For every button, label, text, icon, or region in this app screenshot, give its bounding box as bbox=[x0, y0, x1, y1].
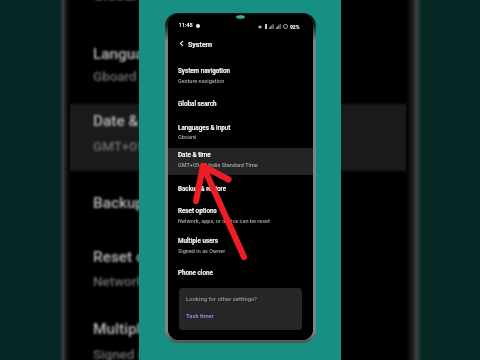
staticText: Phone clone bbox=[178, 269, 213, 276]
button[interactable] bbox=[168, 117, 313, 144]
staticText: Multiple users bbox=[178, 237, 218, 244]
staticText: Gboard bbox=[178, 134, 196, 140]
button[interactable] bbox=[69, 304, 413, 360]
staticText: Task timer bbox=[186, 313, 214, 320]
staticText: Reset options bbox=[178, 207, 217, 214]
button[interactable] bbox=[168, 145, 313, 172]
staticText: GMT+05:30 India Standard Time bbox=[93, 139, 288, 155]
staticText: 11:45 bbox=[179, 22, 193, 28]
staticText: System bbox=[188, 40, 213, 48]
staticText: Date & time bbox=[93, 112, 173, 130]
staticText: Network, apps, or device can be reset bbox=[178, 218, 270, 224]
staticText: Global search bbox=[93, 0, 187, 4]
button[interactable] bbox=[69, 232, 413, 299]
staticText: Network, apps, or device can be reset bbox=[93, 274, 317, 290]
button[interactable] bbox=[168, 178, 313, 198]
staticText: Backup & restore bbox=[93, 194, 211, 212]
button[interactable] bbox=[69, 95, 413, 162]
button[interactable] bbox=[168, 230, 313, 257]
button[interactable] bbox=[168, 263, 313, 283]
staticText: Signed in as Owner bbox=[93, 347, 208, 360]
staticText: Signed in as Owner bbox=[178, 248, 226, 254]
button[interactable] bbox=[168, 93, 313, 113]
staticText: Gboard bbox=[93, 69, 137, 85]
button[interactable] bbox=[69, 28, 413, 95]
staticText: System navigation bbox=[178, 67, 230, 74]
staticText: GMT+05:30 India Standard Time bbox=[178, 162, 258, 168]
button[interactable] bbox=[69, 0, 413, 18]
button[interactable] bbox=[168, 201, 313, 228]
staticText: Multiple users bbox=[93, 320, 191, 338]
staticText: Global search bbox=[178, 100, 217, 107]
other: Back bbox=[178, 40, 185, 47]
staticText: Gesture navigation bbox=[178, 78, 225, 84]
button[interactable]: Back bbox=[168, 34, 313, 53]
staticText: Looking for other settings? bbox=[186, 296, 257, 303]
staticText: Date & time bbox=[178, 151, 211, 158]
staticText: 92% bbox=[290, 24, 300, 30]
staticText: Backup & restore bbox=[178, 185, 227, 192]
staticText: Languages & input bbox=[178, 124, 231, 131]
staticText: Reset options bbox=[93, 248, 188, 266]
staticText: Languages & input bbox=[93, 45, 221, 63]
button[interactable] bbox=[185, 311, 217, 322]
button[interactable] bbox=[168, 61, 313, 88]
button[interactable] bbox=[69, 177, 413, 226]
